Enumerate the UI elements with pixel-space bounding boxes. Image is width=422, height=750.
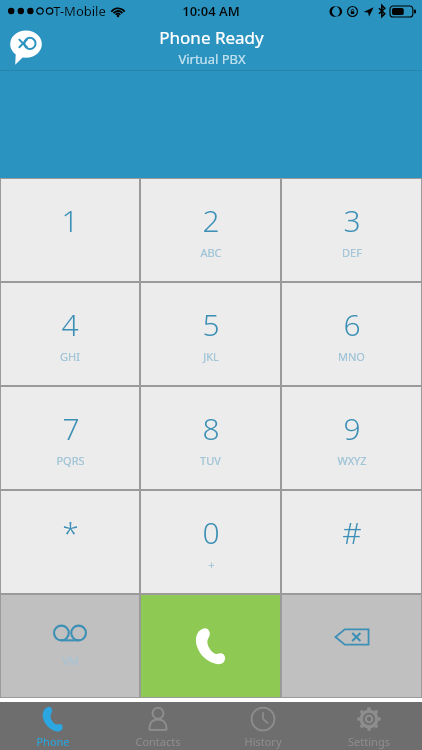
button[interactable]: # [282, 491, 421, 593]
staticText: 9 [343, 408, 361, 449]
button[interactable]: History [210, 702, 316, 750]
button[interactable]: 8 [141, 387, 280, 489]
button[interactable]: Call [141, 595, 280, 697]
button[interactable]: 6 [282, 283, 421, 385]
staticText: Virtual PBX [178, 50, 246, 68]
staticText: 8 [202, 408, 220, 449]
staticText: Phone [36, 734, 70, 749]
staticText: T-Mobile [53, 2, 106, 20]
staticText: Phone Ready [159, 26, 264, 49]
staticText: DEF [342, 245, 362, 260]
staticText: Contacts [135, 734, 181, 749]
staticText: PQRS [56, 453, 85, 468]
staticText: Settings [348, 734, 390, 749]
button[interactable]: * [1, 491, 139, 593]
button[interactable]: 9 [282, 387, 421, 489]
button[interactable]: Settings [316, 702, 422, 750]
button[interactable]: Phone [0, 702, 105, 750]
staticText: 2 [202, 200, 220, 241]
button[interactable]: 2 [141, 179, 280, 281]
staticText: 3 [343, 200, 361, 241]
staticText: MNO [338, 349, 365, 364]
staticText: TUV [200, 453, 221, 468]
button[interactable]: Account [8, 29, 44, 65]
staticText: History [244, 734, 282, 749]
button[interactable]: VM [1, 595, 139, 697]
staticText: + [208, 557, 215, 572]
staticText: WXYZ [337, 453, 367, 468]
button[interactable]: 0 [141, 491, 280, 593]
button[interactable]: Contacts [105, 702, 210, 750]
staticText: JKL [203, 349, 219, 364]
staticText: 5 [202, 304, 220, 345]
staticText: 1 [61, 200, 79, 241]
button[interactable]: 4 [1, 283, 139, 385]
staticText: 7 [62, 408, 80, 449]
staticText: 10:04 AM [182, 2, 240, 20]
staticText: VM [62, 653, 79, 668]
button[interactable]: 1 [1, 179, 139, 281]
staticText: 4 [61, 304, 79, 345]
staticText: ABC [200, 245, 222, 260]
staticText: GHI [60, 349, 80, 364]
button[interactable]: 5 [141, 283, 280, 385]
button[interactable]: Backspace [282, 595, 421, 697]
staticText: * [62, 512, 79, 553]
button[interactable]: 7 [1, 387, 139, 489]
staticText: # [342, 512, 362, 553]
staticText: 0 [202, 512, 220, 553]
button[interactable]: 3 [282, 179, 421, 281]
staticText: 6 [343, 304, 361, 345]
